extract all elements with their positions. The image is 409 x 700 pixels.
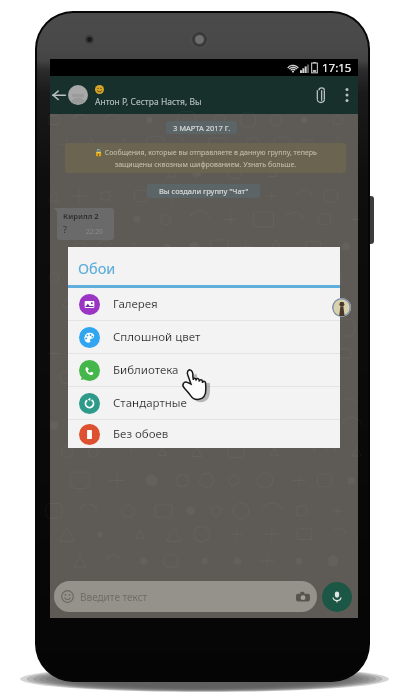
staticText: ? (63, 223, 67, 235)
staticText: 17:15 (322, 60, 352, 76)
button[interactable]: Сплошной цвет (68, 321, 340, 353)
button[interactable]: More options (336, 76, 358, 114)
staticText: Антон Р, Сестра Настя, Вы (95, 96, 202, 108)
staticText: 22:20 (86, 227, 103, 236)
staticText: Стандартные (113, 395, 187, 411)
button[interactable]: Введите текст (54, 581, 317, 612)
staticText: Введите текст (80, 590, 148, 604)
staticText: Галерея (113, 296, 158, 312)
button[interactable]: Attach (306, 76, 336, 114)
button[interactable]: Библиотека (68, 354, 340, 386)
staticText: Библиотека (113, 362, 179, 378)
staticText: 3 МАРТА 2017 Г. (173, 123, 231, 133)
button[interactable]: Без обоев (68, 420, 340, 448)
staticText: Обои (78, 258, 116, 278)
button[interactable]: Record voice message (322, 582, 352, 612)
button[interactable]: Стандартные (68, 387, 340, 419)
staticText: Без обоев (113, 426, 169, 442)
button[interactable]: Back (50, 76, 67, 114)
staticText: Вы создали группу "Чат" (159, 186, 249, 196)
button[interactable]: Галерея (68, 288, 340, 320)
staticText: Кирилл 2 (63, 211, 99, 221)
staticText: 🔒 Сообщения, которые вы отправляете в да… (75, 148, 336, 169)
staticText: Сплошной цвет (113, 329, 201, 345)
